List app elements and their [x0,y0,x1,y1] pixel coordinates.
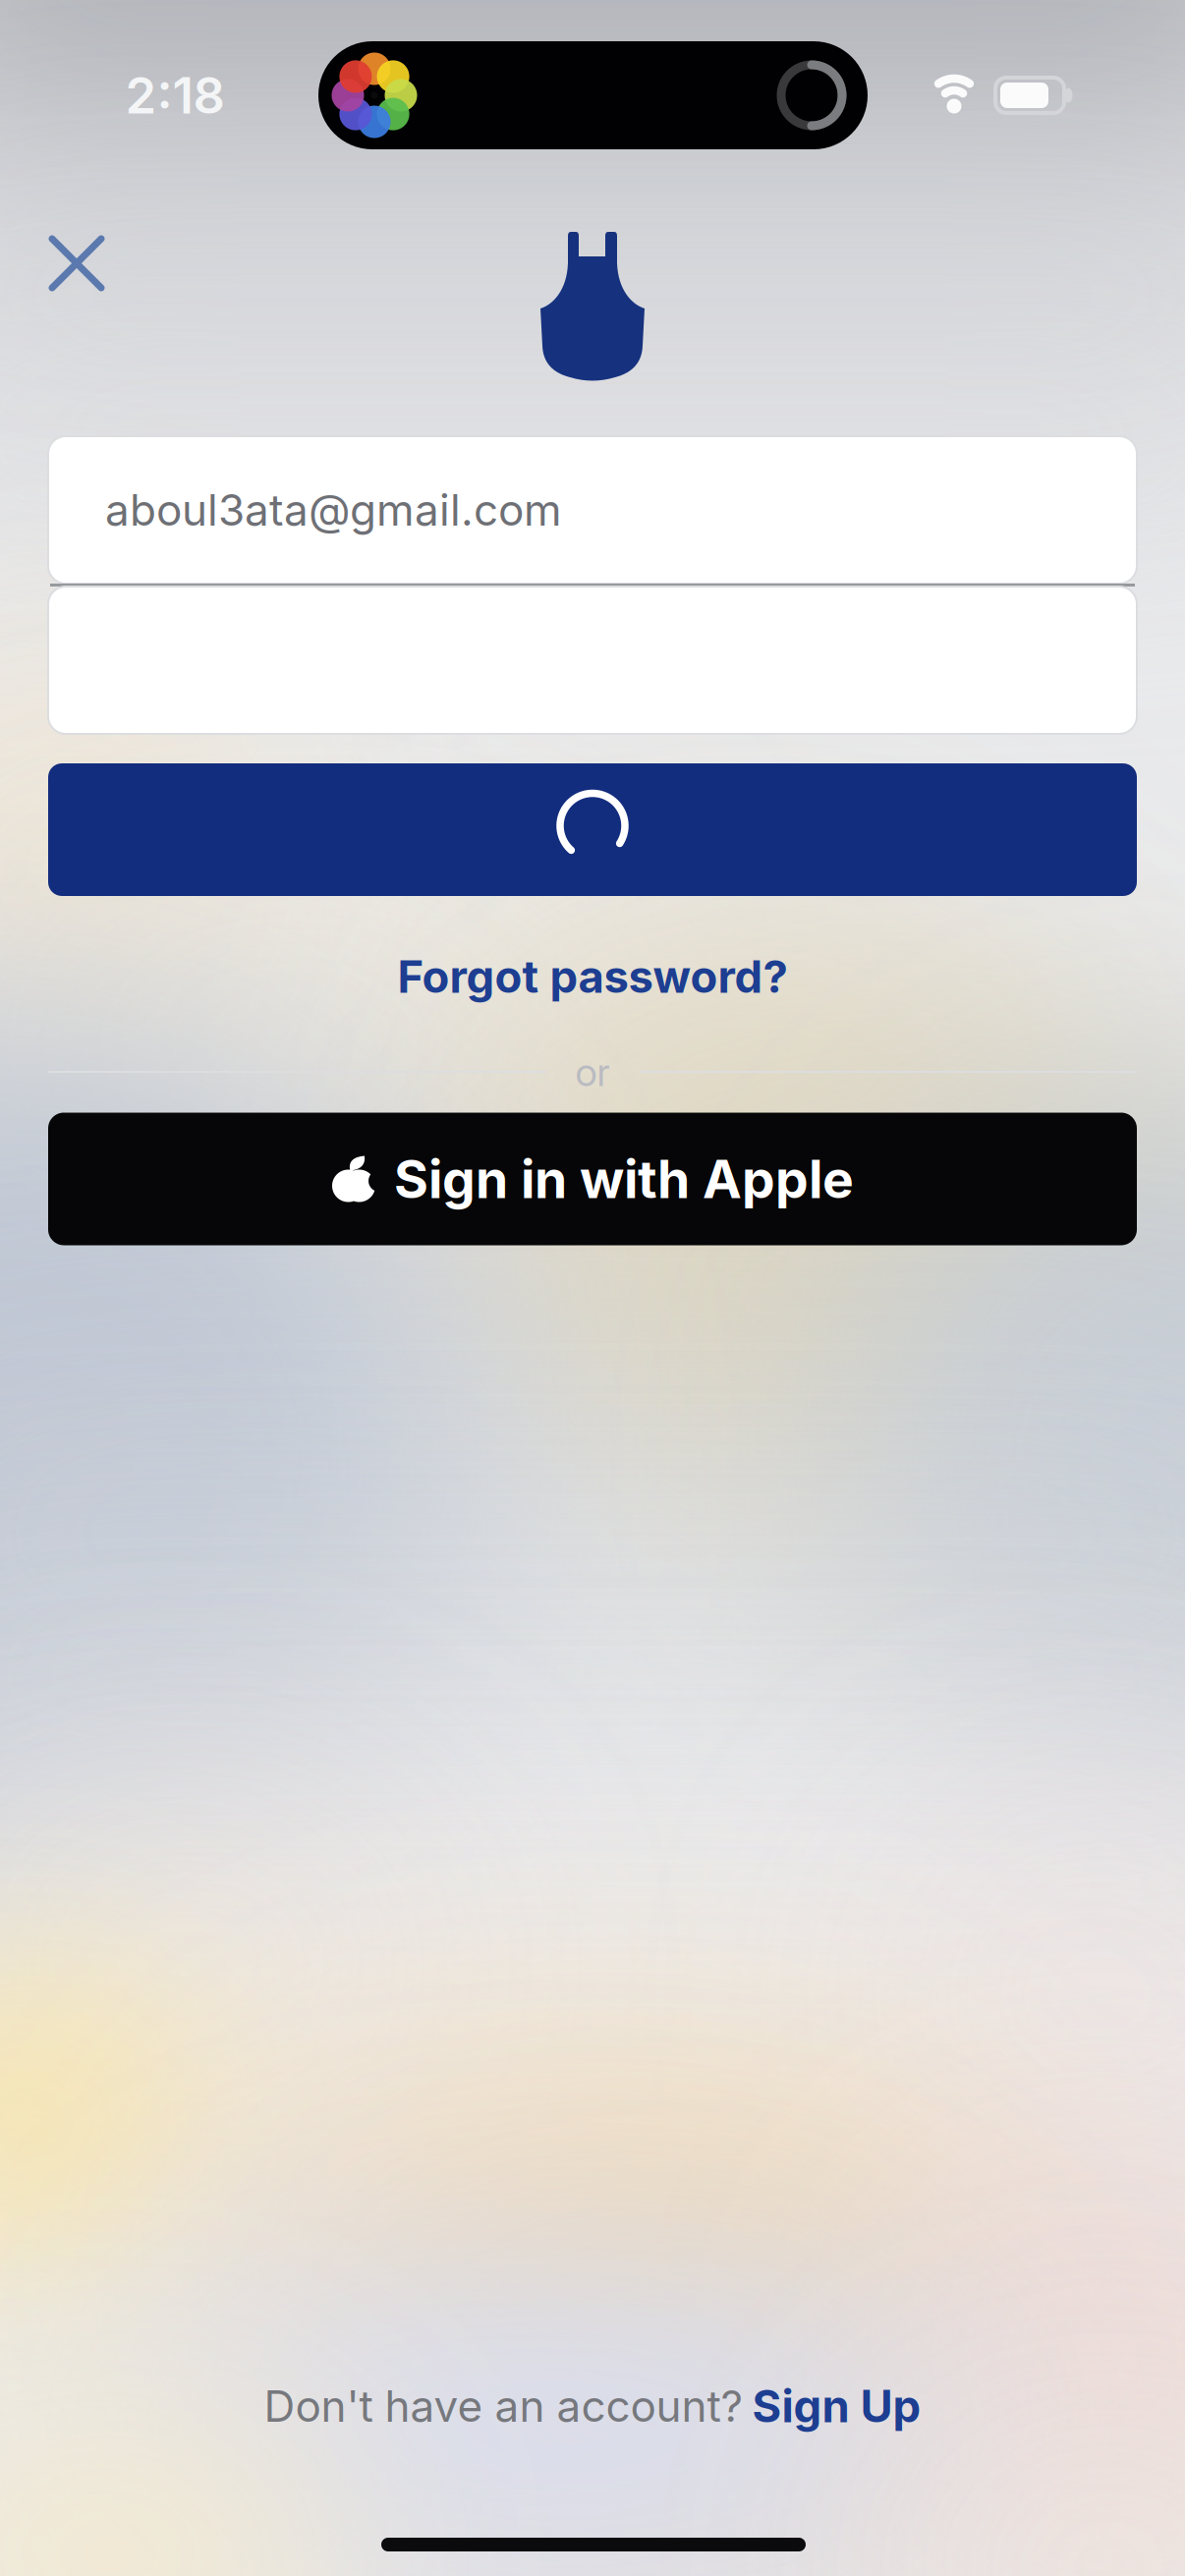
staticText: Forgot password? [397,950,788,1003]
button[interactable]: Sign in with Apple [48,1113,1137,1245]
staticText: aboul3ata@gmail.com [105,484,562,535]
staticText: Don't have an account? [264,2380,742,2431]
button[interactable] [48,587,1137,734]
button[interactable] [48,763,1137,896]
button[interactable]: Sign Up [752,2380,921,2432]
button[interactable]: Forgot password? [388,941,797,1013]
button[interactable]: aboul3ata@gmail.com [0,436,1185,584]
staticText: Sign Up [752,2380,921,2432]
button[interactable] [38,225,115,302]
staticText: 2:18 [125,66,225,125]
staticText: or [575,1049,610,1095]
staticText: Sign in with Apple [394,1148,854,1210]
